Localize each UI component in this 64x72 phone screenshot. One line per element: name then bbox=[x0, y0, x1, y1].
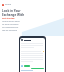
staticText: Look in Your Exchange With bbox=[2, 9, 25, 17]
button[interactable] bbox=[24, 65, 30, 67]
staticText: Lorem ipsum dolor sit amet consecte tur … bbox=[2, 20, 20, 32]
staticText: brand bbox=[5, 3, 12, 6]
staticText: Get started bbox=[2, 17, 15, 20]
button[interactable]: brand bbox=[2, 3, 12, 6]
